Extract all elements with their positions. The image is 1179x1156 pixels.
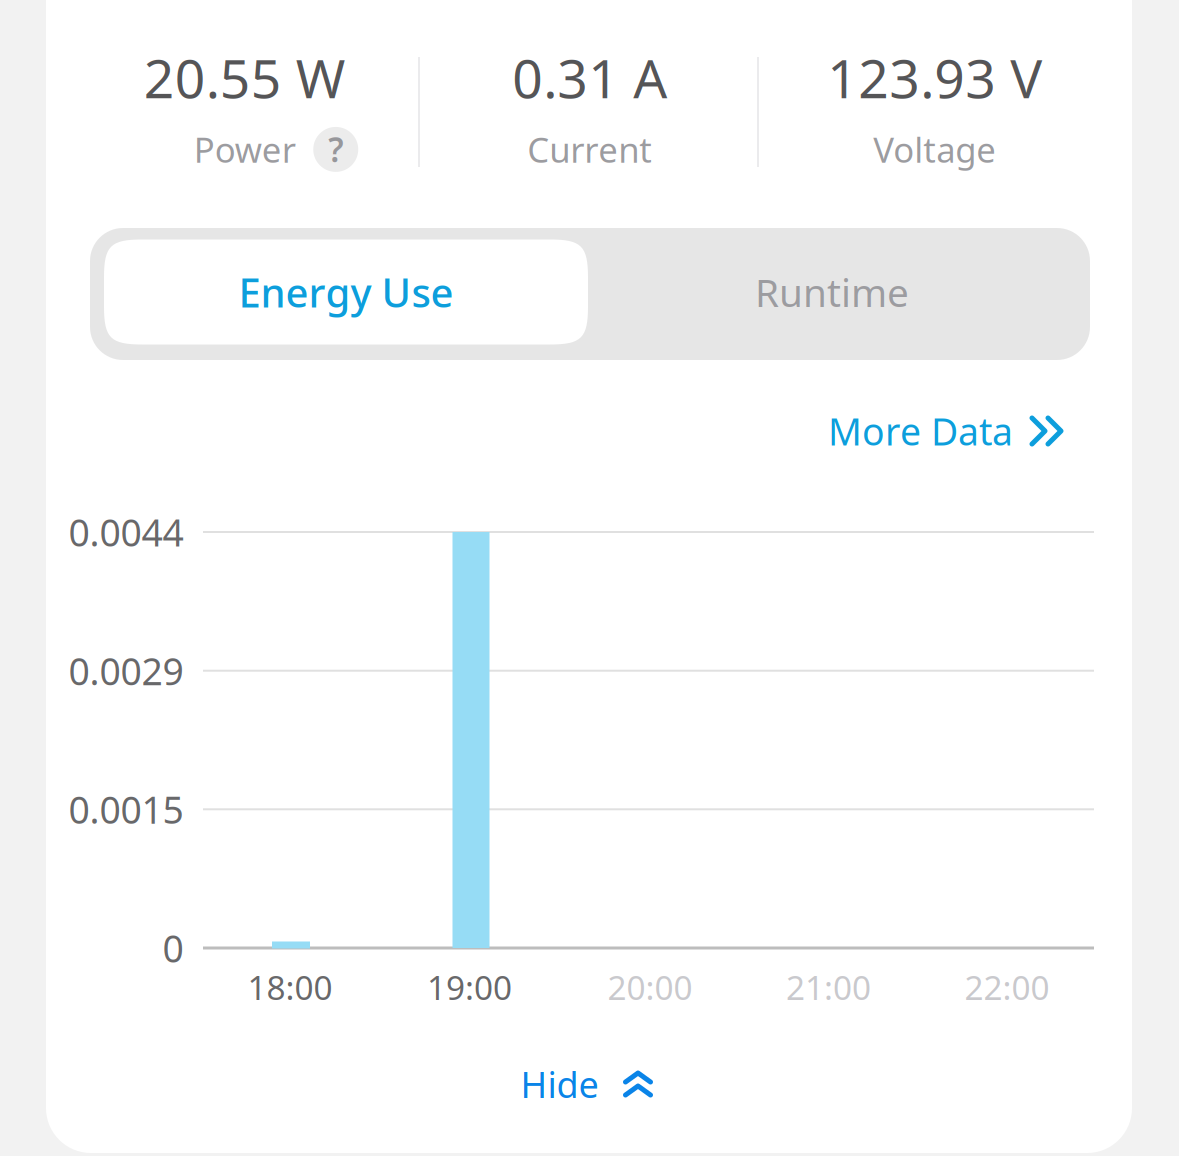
staticText: 0.0044 bbox=[68, 507, 183, 557]
staticText: Energy Use bbox=[238, 265, 453, 318]
staticText: More Data bbox=[828, 406, 1013, 456]
staticText: 123.93 V bbox=[827, 42, 1042, 113]
button[interactable]: More Data bbox=[820, 396, 1072, 466]
staticText: ? bbox=[328, 127, 343, 172]
staticText: 22:00 bbox=[964, 965, 1049, 1009]
staticText: 0.31 A bbox=[512, 42, 667, 113]
button[interactable]: Runtime bbox=[588, 239, 1076, 344]
staticText: 19:00 bbox=[427, 965, 512, 1009]
staticText: Voltage bbox=[873, 126, 996, 172]
staticText: Current bbox=[527, 126, 652, 172]
staticText: Runtime bbox=[755, 266, 909, 318]
button[interactable]: Energy Use bbox=[104, 239, 588, 344]
staticText: 0.0029 bbox=[68, 646, 183, 695]
staticText: Hide bbox=[520, 1060, 598, 1108]
staticText: 0.0015 bbox=[68, 784, 183, 834]
button[interactable]: About power bbox=[313, 127, 358, 172]
staticText: 18:00 bbox=[247, 965, 332, 1009]
staticText: 20.55 W bbox=[144, 42, 346, 113]
staticText: 0 bbox=[162, 923, 183, 973]
button[interactable]: Hide bbox=[510, 1050, 663, 1118]
staticText: Power bbox=[194, 126, 296, 172]
staticText: 20:00 bbox=[607, 965, 692, 1009]
staticText: 21:00 bbox=[786, 965, 871, 1009]
